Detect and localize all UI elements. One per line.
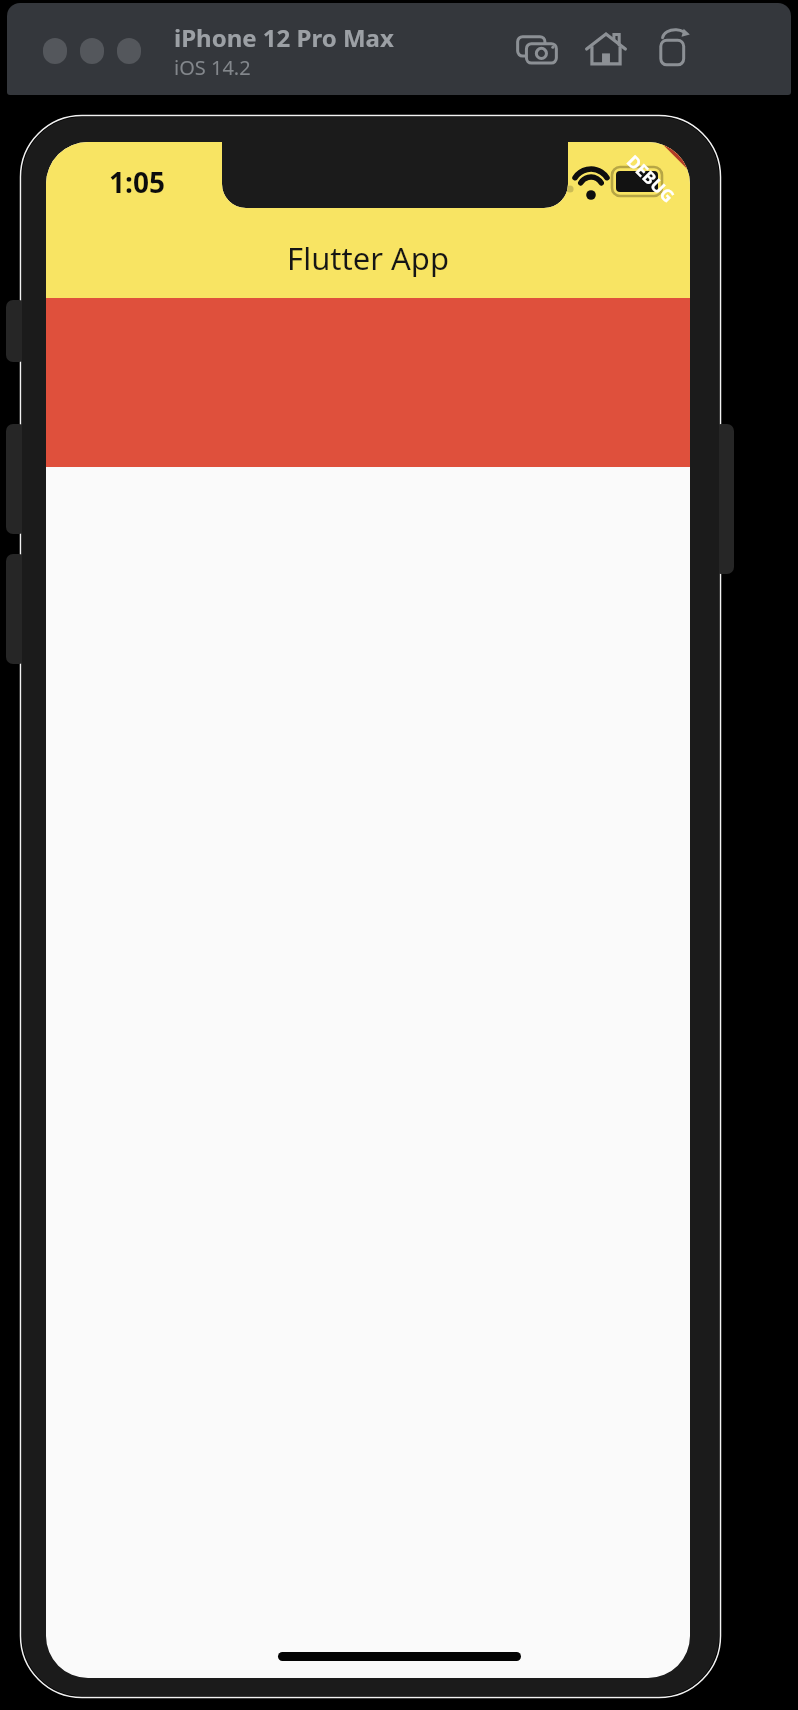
staticText: iOS 14.2 bbox=[174, 54, 251, 81]
staticText: 1:05 bbox=[109, 163, 165, 201]
staticText: DEBUG bbox=[622, 150, 680, 208]
button[interactable]: Flutter App bbox=[46, 237, 690, 281]
button[interactable]: Rotate device bbox=[648, 23, 700, 75]
button[interactable]: Zoom bbox=[117, 38, 141, 64]
button[interactable]: Home bbox=[580, 23, 632, 75]
button[interactable]: Screenshot bbox=[511, 23, 563, 75]
staticText: iPhone 12 Pro Max bbox=[174, 21, 394, 54]
button[interactable]: Minimize bbox=[80, 38, 104, 64]
staticText: Flutter App bbox=[46, 237, 690, 279]
button[interactable]: Close bbox=[43, 38, 67, 64]
